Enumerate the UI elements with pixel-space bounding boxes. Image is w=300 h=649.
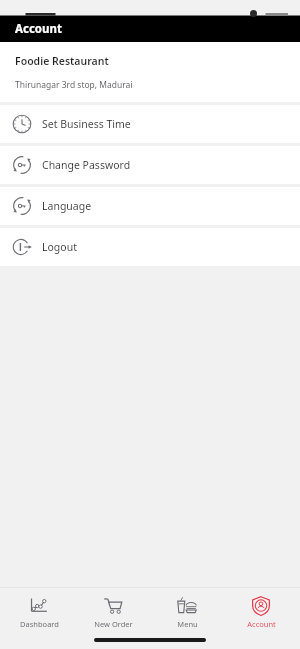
button[interactable]: Menu	[152, 593, 222, 631]
staticText: New Order	[94, 619, 133, 629]
staticText: Account	[15, 21, 62, 37]
staticText: Account	[247, 619, 276, 629]
staticText: Set Business Time	[42, 117, 131, 131]
button[interactable]: Change Password	[0, 146, 300, 184]
staticText: Dashboard	[20, 619, 59, 629]
button[interactable]: Logout	[0, 228, 300, 266]
staticText: Language	[42, 199, 92, 213]
button[interactable]: Set Business Time	[0, 105, 300, 143]
button[interactable]: New Order	[78, 593, 148, 631]
staticText: Change Password	[42, 158, 131, 172]
button[interactable]: Language	[0, 187, 300, 225]
button[interactable]: Account	[226, 593, 296, 631]
button[interactable]: Dashboard	[4, 593, 74, 631]
staticText: Logout	[42, 240, 77, 254]
staticText: Menu	[177, 619, 198, 629]
staticText: Thirunagar 3rd stop, Madurai	[15, 79, 133, 91]
staticText: Foodie Restaurant	[15, 54, 109, 68]
